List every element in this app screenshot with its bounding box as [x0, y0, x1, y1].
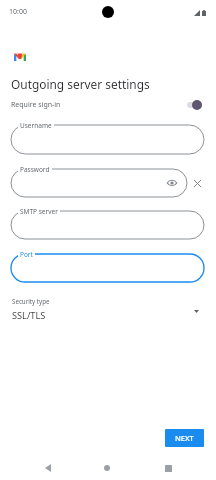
- staticText: SMTP server: [20, 207, 58, 216]
- button[interactable]: Recents: [150, 456, 186, 480]
- button[interactable]: Show password: [165, 176, 179, 190]
- staticText: Username: [20, 121, 52, 130]
- button[interactable]: Clear: [191, 177, 204, 190]
- staticText: Security type: [12, 297, 50, 305]
- button[interactable]: Password: [11, 169, 187, 197]
- button[interactable]: Port: [11, 254, 204, 282]
- staticText: Password: [20, 165, 50, 174]
- staticText: SSL/TLS: [12, 309, 46, 322]
- button[interactable]: Username: [11, 125, 204, 154]
- staticText: Outgoing server settings: [11, 76, 150, 92]
- button[interactable]: NEXT: [165, 429, 204, 447]
- button[interactable]: Back: [30, 456, 66, 480]
- staticText: Port: [20, 250, 33, 259]
- button[interactable]: Security type: [0, 295, 216, 323]
- staticText: 10:00: [9, 7, 27, 17]
- button[interactable]: Require sign-in: [0, 97, 216, 113]
- staticText: Require sign-in: [11, 100, 61, 110]
- button[interactable]: SMTP server: [11, 211, 204, 239]
- staticText: NEXT: [175, 433, 194, 443]
- button[interactable]: Home: [89, 456, 125, 480]
